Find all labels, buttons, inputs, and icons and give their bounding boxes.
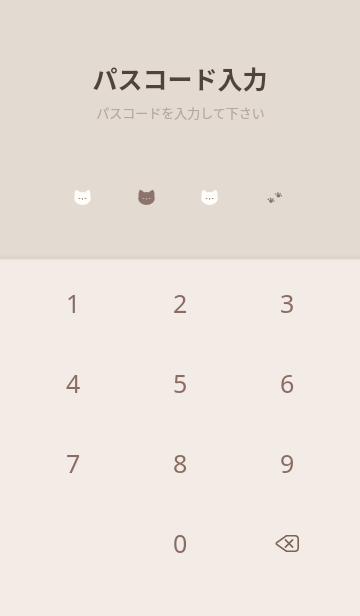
staticText: 7	[66, 446, 81, 480]
staticText: 4	[66, 366, 81, 400]
button[interactable]: 6	[243, 349, 331, 417]
staticText: 1	[66, 286, 81, 320]
button[interactable]: 4	[29, 349, 117, 417]
staticText: パスコード入力	[92, 60, 268, 96]
staticText: 2	[173, 286, 188, 320]
staticText: 6	[280, 366, 295, 400]
button[interactable]: 8	[136, 429, 224, 497]
button[interactable]: 9	[243, 429, 331, 497]
button[interactable]: 1	[29, 269, 117, 337]
staticText: 8	[173, 446, 188, 480]
staticText: 5	[173, 366, 188, 400]
button[interactable]: Delete	[243, 509, 331, 577]
staticText: パスコードを入力して下さい	[96, 103, 265, 122]
button[interactable]: 2	[136, 269, 224, 337]
button[interactable]: 5	[136, 349, 224, 417]
staticText: 3	[280, 286, 295, 320]
button[interactable]: 7	[29, 429, 117, 497]
button[interactable]: 0	[136, 509, 224, 577]
button[interactable]: 3	[243, 269, 331, 337]
staticText: 0	[173, 526, 188, 560]
staticText: 9	[280, 446, 295, 480]
